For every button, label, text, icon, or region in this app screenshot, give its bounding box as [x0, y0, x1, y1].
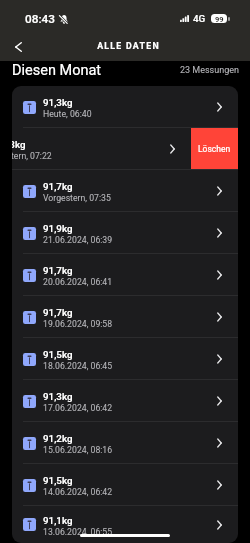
staticText: 20.06.2024, 06:41 — [43, 277, 113, 287]
staticText: 91,5kg — [43, 349, 73, 360]
button[interactable]: 91,3kg — [12, 380, 238, 422]
staticText: 91,7kg — [43, 265, 73, 276]
staticText: Heute, 06:40 — [43, 109, 92, 119]
button[interactable]: Löschen — [191, 128, 238, 170]
button[interactable]: 91,2kg — [12, 422, 238, 464]
staticText: 14.06.2024, 06:42 — [43, 487, 113, 497]
button[interactable]: Back — [5, 33, 31, 59]
button[interactable]: 91,3kg — [12, 128, 191, 170]
button[interactable]: 91,5kg — [12, 338, 238, 380]
button[interactable]: 91,1kg — [12, 506, 238, 543]
staticText: 91,7kg — [43, 181, 73, 192]
staticText: 13.06.2024, 06:55 — [43, 527, 113, 537]
staticText: 08:43 — [25, 12, 55, 26]
staticText: 19.06.2024, 09:58 — [43, 319, 113, 329]
button[interactable]: 91,5kg — [12, 464, 238, 506]
staticText: Gestern, 07:22 — [12, 151, 52, 161]
staticText: 91,7kg — [43, 307, 73, 318]
staticText: 17.06.2024, 06:42 — [43, 403, 113, 413]
button[interactable]: 91,3kg — [12, 86, 238, 128]
button[interactable]: 91,7kg — [12, 170, 238, 212]
staticText: 91,3kg — [12, 139, 26, 150]
staticText: 91,5kg — [43, 475, 73, 486]
staticText: Löschen — [198, 144, 231, 154]
staticText: 99 — [215, 15, 224, 23]
staticText: 91,1kg — [43, 515, 73, 526]
staticText: ALLE DATEN — [97, 41, 160, 51]
staticText: 23 Messungen — [180, 65, 239, 76]
staticText: 18.06.2024, 06:45 — [43, 361, 113, 371]
staticText: 4G — [193, 13, 206, 24]
staticText: 91,3kg — [43, 97, 73, 108]
staticText: 91,3kg — [43, 391, 73, 402]
button[interactable]: 91,7kg — [12, 296, 238, 338]
staticText: 15.06.2024, 08:16 — [43, 445, 113, 455]
button[interactable]: 91,7kg — [12, 254, 238, 296]
staticText: Diesen Monat — [12, 62, 102, 79]
staticText: Vorgestern, 07:35 — [43, 193, 111, 203]
button[interactable]: 91,9kg — [12, 212, 238, 254]
staticText: 91,2kg — [43, 433, 73, 444]
staticText: 21.06.2024, 06:39 — [43, 235, 113, 245]
staticText: 91,9kg — [43, 223, 73, 234]
